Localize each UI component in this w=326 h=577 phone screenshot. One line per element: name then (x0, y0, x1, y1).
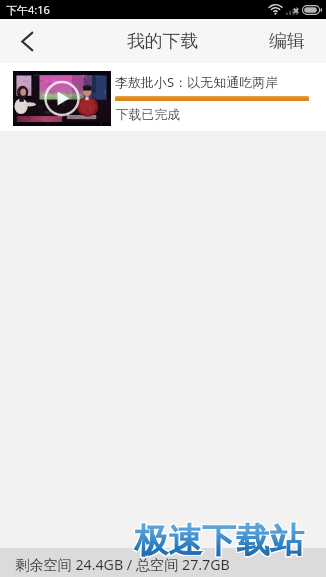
staticText: 下载已完成 (116, 107, 180, 123)
button[interactable]: 编辑 (255, 19, 326, 63)
staticText: 极速下载站 (134, 518, 304, 561)
button[interactable]: Back (0, 19, 48, 63)
staticText: 剩余空间 24.4GB / 总空间 27.7GB (15, 555, 230, 574)
staticText: 李敖批小S：以无知通吃两岸 (115, 73, 279, 91)
staticText: 极速下载站 (133, 519, 303, 562)
staticText: 我的下载 (127, 30, 199, 52)
staticText: 极速下载站 (134, 520, 304, 563)
staticText: 极速下载站 (135, 518, 305, 561)
staticText: 极速下载站 (135, 520, 305, 563)
staticText: 极速下载站 (135, 519, 305, 562)
staticText: 极速下载站 (133, 520, 303, 563)
staticText: 编辑 (269, 30, 305, 52)
staticText: 下午4:16 (6, 2, 50, 17)
staticText: 极速下载站 (134, 519, 304, 562)
staticText: 极速下载站 (133, 518, 303, 561)
button[interactable]: 李敖批小S：以无知通吃两岸 (0, 63, 326, 131)
